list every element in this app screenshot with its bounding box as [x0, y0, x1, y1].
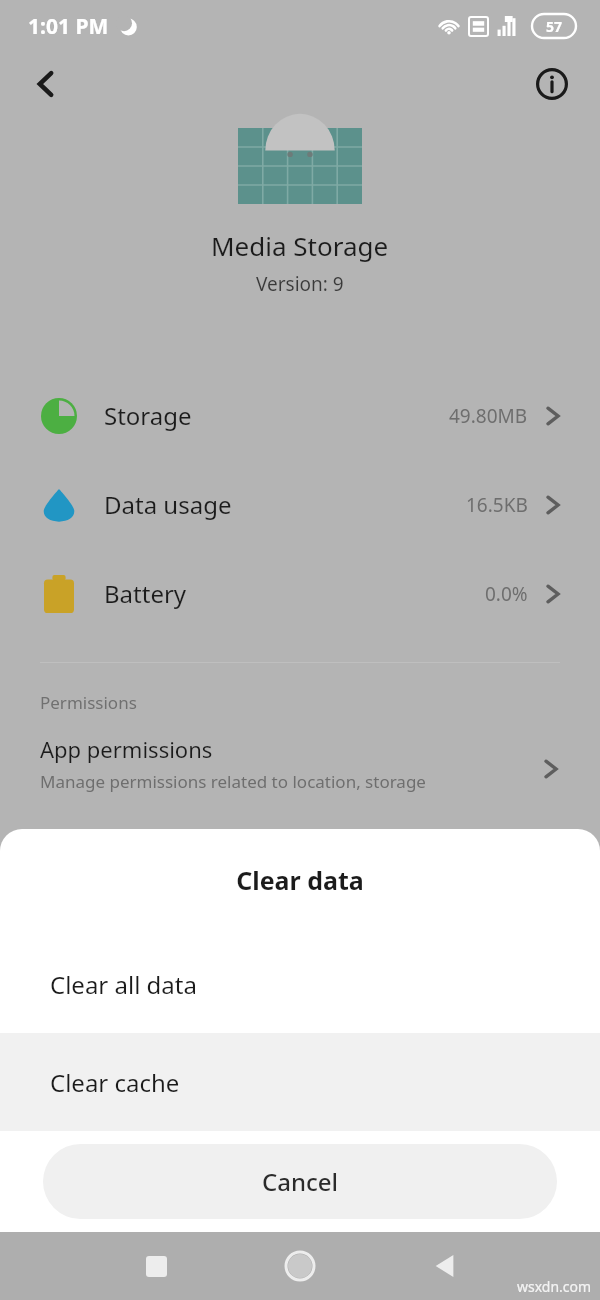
staticText: Cancel [262, 1165, 339, 1198]
staticText: 49.80MB [449, 403, 528, 429]
staticText: Manage permissions related to location, … [40, 770, 426, 793]
staticText: 57 [546, 17, 563, 36]
staticText: 0.0% [485, 581, 528, 607]
button[interactable]: Clear all data [0, 935, 600, 1033]
button[interactable]: Back [422, 1244, 466, 1288]
staticText: App permissions [40, 734, 213, 764]
button[interactable]: Storage [0, 371, 600, 460]
staticText: 16.5KB [466, 492, 528, 518]
button[interactable]: Back [20, 58, 72, 110]
staticText: Clear data [0, 863, 600, 897]
button[interactable]: App info [526, 58, 578, 110]
staticText: Media Storage [211, 228, 389, 263]
button[interactable]: Clear cache [0, 1033, 600, 1131]
staticText: Battery [104, 577, 187, 610]
staticText: wsxdn.com [517, 1277, 592, 1296]
staticText: 1:01 PM [28, 12, 109, 41]
staticText: Version: 9 [256, 271, 344, 297]
staticText: Storage [104, 399, 192, 432]
button[interactable]: Data usage [0, 460, 600, 549]
staticText: Data usage [104, 488, 232, 521]
button[interactable]: Recents [134, 1244, 178, 1288]
button[interactable]: App permissions [0, 734, 600, 793]
button[interactable]: Cancel [43, 1144, 557, 1219]
staticText: Permissions [40, 691, 137, 714]
button[interactable]: Battery [0, 549, 600, 638]
button[interactable]: Home [278, 1244, 322, 1288]
staticText: Clear cache [50, 1066, 180, 1099]
staticText: Clear all data [50, 968, 197, 1001]
